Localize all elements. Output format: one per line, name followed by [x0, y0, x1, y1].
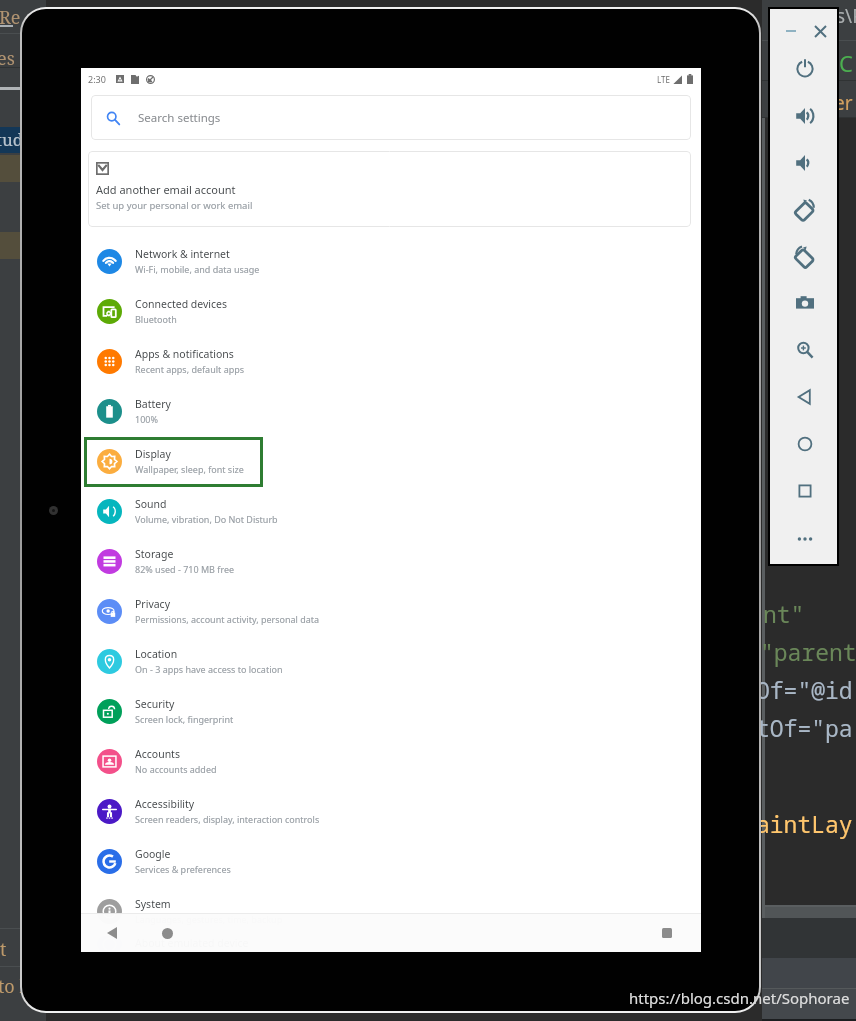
button[interactable]: Sound: [81, 486, 701, 536]
staticText: Sound: [135, 497, 167, 511]
staticText: Screen readers, display, interaction con…: [135, 813, 320, 825]
button[interactable]: zoom: [792, 337, 818, 363]
staticText: LTE: [657, 74, 670, 85]
staticText: Accessibility: [135, 797, 195, 811]
staticText: Wi-Fi, mobile, and data usage: [135, 263, 260, 275]
staticText: 100%: [135, 413, 158, 425]
staticText: er: [834, 90, 853, 116]
button[interactable]: power: [792, 55, 818, 81]
button[interactable]: rotl: [792, 197, 818, 223]
staticText: 2:30: [88, 73, 106, 85]
staticText: to b: [0, 974, 31, 999]
staticText: Set up your personal or work email: [96, 199, 253, 212]
button[interactable]: Apps & notifications: [81, 336, 701, 386]
staticText: Permissions, account activity, personal …: [135, 613, 320, 625]
staticText: Screen lock, fingerprint: [135, 713, 234, 725]
button[interactable]: Security: [81, 686, 701, 736]
staticText: System: [135, 897, 171, 911]
staticText: Bluetooth: [135, 313, 177, 325]
staticText: nt": [763, 598, 805, 629]
staticText: C: [839, 48, 853, 78]
button[interactable]: Privacy: [81, 586, 701, 636]
staticText: aintLay: [756, 808, 853, 839]
staticText: Display: [135, 447, 171, 461]
button[interactable]: Close: [810, 21, 830, 41]
staticText: Languages, gestures, time, backup: [135, 913, 283, 925]
staticText: Storage: [135, 547, 174, 561]
staticText: Security: [135, 697, 175, 711]
button[interactable]: home: [792, 431, 818, 457]
staticText: Accounts: [135, 747, 180, 761]
staticText: Wallpaper, sleep, font size: [135, 463, 244, 475]
staticText: Re: [0, 5, 21, 30]
button[interactable]: Location: [81, 636, 701, 686]
button[interactable]: Minimize: [781, 21, 801, 41]
button[interactable]: Display: [81, 436, 701, 486]
staticText: Services & preferences: [135, 863, 231, 875]
button[interactable]: Home: [156, 922, 178, 944]
button[interactable]: Battery: [81, 386, 701, 436]
staticText: Privacy: [135, 597, 171, 611]
button[interactable]: rotr: [792, 244, 818, 270]
staticText: About emulated device: [135, 936, 249, 950]
staticText: Apps & notifications: [135, 347, 234, 361]
staticText: Volume, vibration, Do Not Disturb: [135, 513, 278, 525]
staticText: tud: [0, 128, 24, 151]
staticText: Recent apps, default apps: [135, 363, 245, 375]
button[interactable]: voldown: [792, 150, 818, 176]
staticText: No accounts added: [135, 763, 217, 775]
staticText: Network & internet: [135, 247, 230, 261]
staticText: Connected devices: [135, 297, 228, 311]
staticText: 82% used - 710 MB free: [135, 563, 235, 575]
button[interactable]: Accounts: [81, 736, 701, 786]
staticText: tOf="pa: [756, 712, 853, 743]
staticText: t: [0, 937, 7, 962]
button[interactable]: About emulated device: [81, 936, 701, 952]
staticText: es: [0, 46, 15, 71]
staticText: On - 3 apps have access to location: [135, 663, 283, 675]
staticText: Of="@id: [756, 674, 853, 705]
staticText: Battery: [135, 397, 171, 411]
button[interactable]: more: [792, 526, 818, 552]
button[interactable]: Connected devices: [81, 286, 701, 336]
button[interactable]: recent: [792, 478, 818, 504]
staticText: Add another email account: [96, 182, 236, 197]
button[interactable]: System: [81, 886, 701, 936]
button[interactable]: Add another email account: [88, 151, 691, 227]
staticText: s\P: [836, 3, 856, 29]
staticText: Location: [135, 647, 178, 661]
button[interactable]: Recents: [656, 922, 678, 944]
button[interactable]: Accessibility: [81, 786, 701, 836]
staticText: Search settings: [138, 110, 221, 126]
button[interactable]: volup: [792, 103, 818, 129]
button[interactable]: Storage: [81, 536, 701, 586]
button[interactable]: Google: [81, 836, 701, 886]
staticText: https://blog.csdn.net/Sophorae: [629, 988, 850, 1008]
staticText: Google: [135, 847, 171, 861]
button[interactable]: Search settings: [91, 95, 691, 140]
button[interactable]: camera: [792, 290, 818, 316]
button[interactable]: Back: [101, 922, 123, 944]
button[interactable]: back: [792, 384, 818, 410]
button[interactable]: Network & internet: [81, 236, 701, 286]
staticText: "parent: [760, 636, 856, 667]
